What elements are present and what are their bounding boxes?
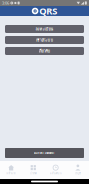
staticText: แจ้งเตือน [50,171,62,175]
button[interactable]: หน้าแรก [0,161,22,179]
button[interactable]: ADVERTISEMENT [5,148,84,158]
button[interactable]: เกี่ยวกับ [5,47,84,55]
staticText: ADVERTISEMENT [34,151,55,155]
staticText: บัญชี [75,171,81,175]
button[interactable]: เข้าสู่ระบบ [5,36,84,44]
button[interactable]: ลงทะเบียน [5,25,84,33]
staticText: เกี่ยวกับ [38,48,50,54]
staticText: หน้าแรก [6,171,16,175]
staticText: 3:06 [2,0,9,6]
button[interactable]: บัญชี [67,161,89,179]
staticText: ลงทะเบียน [35,26,53,32]
staticText: เข้าสู่ระบบ [35,37,53,43]
button[interactable]: ประวัติ [22,161,44,179]
staticText: ประวัติ [30,171,37,175]
button[interactable]: แจ้งเตือน [44,161,67,179]
staticText: QRS [39,5,57,17]
